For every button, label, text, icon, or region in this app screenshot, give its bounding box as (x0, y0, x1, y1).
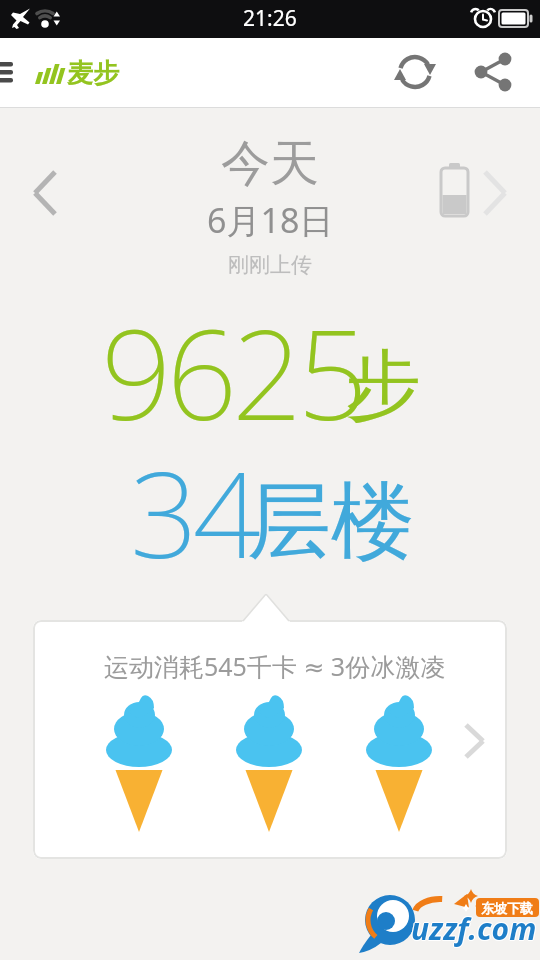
button[interactable] (476, 166, 520, 210)
staticText: 运动消耗545千卡 ≈ 3份冰激凌 (104, 649, 446, 683)
button[interactable] (22, 166, 66, 210)
button[interactable] (0, 51, 30, 95)
staticText: 34 (130, 431, 256, 593)
button[interactable] (468, 47, 518, 97)
staticText: uzzf.com (411, 908, 537, 949)
button[interactable]: 运动消耗545千卡 ≈ 3份冰激凌 (33, 620, 507, 859)
button[interactable] (390, 47, 440, 97)
staticText: uzzf.com (411, 909, 537, 950)
staticText: 今天 (221, 133, 319, 195)
staticText: 东坡下载 (481, 900, 533, 916)
staticText: uzzf.com (411, 907, 537, 948)
staticText: uzzf.com (410, 908, 536, 949)
staticText: uzzf.com (412, 908, 538, 949)
staticText: 步 (345, 338, 421, 434)
staticText: 麦步 (67, 57, 119, 90)
staticText: 层楼 (247, 469, 415, 575)
staticText: 21:26 (243, 4, 297, 33)
staticText: 6月18日 (207, 197, 334, 243)
staticText: 9625 (101, 287, 363, 456)
staticText: 刚刚上传 (228, 252, 312, 278)
